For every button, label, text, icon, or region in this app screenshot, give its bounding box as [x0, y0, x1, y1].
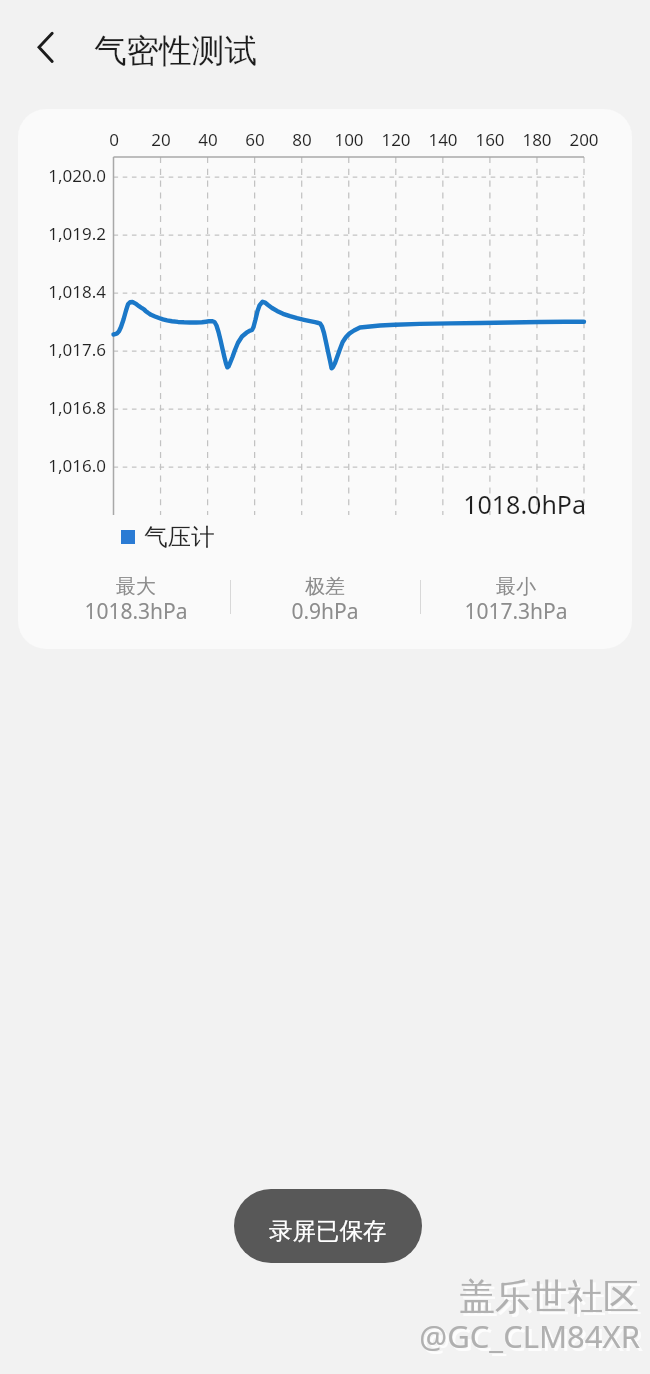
button[interactable]: 录屏已保存	[234, 1189, 422, 1263]
staticText: 120	[366, 128, 426, 151]
staticText: 140	[413, 128, 473, 151]
staticText: 1,019.2	[19, 222, 106, 245]
staticText: 盖乐世社区	[291, 1277, 642, 1322]
staticText: 1,020.0	[19, 164, 106, 187]
button[interactable]: Back	[23, 23, 69, 69]
staticText: 1,016.0	[19, 454, 106, 477]
staticText: 1,018.4	[19, 280, 106, 303]
staticText: 20	[131, 128, 191, 151]
staticText: @GC_CLM84XR	[291, 1318, 643, 1360]
staticText: 最小	[426, 574, 606, 599]
staticText: 气压计	[144, 522, 215, 552]
staticText: 1,017.6	[19, 338, 106, 361]
staticText: 盖乐世社区	[288, 1274, 639, 1319]
staticText: 60	[225, 128, 285, 151]
staticText: 最大	[46, 574, 226, 599]
staticText: 180	[507, 128, 567, 151]
staticText: 80	[272, 128, 332, 151]
staticText: 40	[178, 128, 238, 151]
staticText: 0	[84, 128, 144, 151]
staticText: @GC_CLM84XR	[288, 1315, 640, 1357]
staticText: 1017.3hPa	[426, 597, 606, 626]
staticText: 录屏已保存	[269, 1216, 387, 1246]
staticText: 1,016.8	[19, 396, 106, 419]
staticText: 160	[460, 128, 520, 151]
staticText: 0.9hPa	[235, 597, 415, 626]
staticText: 200	[554, 128, 614, 151]
staticText: 极差	[235, 574, 415, 599]
staticText: 1018.0hPa	[321, 487, 586, 521]
staticText: 100	[319, 128, 379, 151]
staticText: 气密性测试	[94, 31, 257, 72]
staticText: 1018.3hPa	[46, 597, 226, 626]
